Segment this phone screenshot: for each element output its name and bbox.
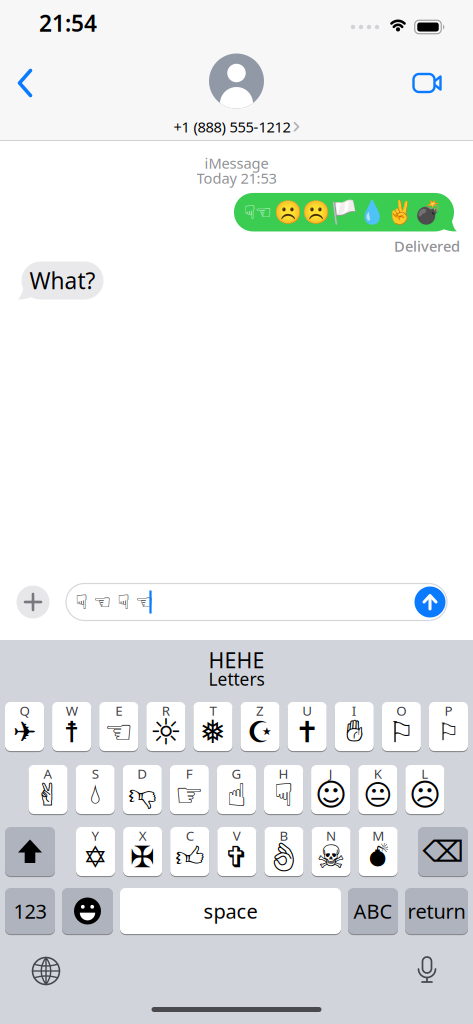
staticText: S	[92, 765, 99, 782]
staticText: ✡	[83, 840, 108, 874]
staticText: Today 21:53	[196, 168, 276, 188]
staticText: P	[444, 702, 452, 719]
button[interactable]: G	[217, 764, 256, 815]
staticText: What?	[29, 265, 95, 295]
staticText: 👎︎	[128, 778, 156, 812]
button[interactable]: H	[264, 764, 303, 815]
staticText: HEHE	[208, 646, 264, 674]
button[interactable]: P	[429, 701, 468, 752]
staticText: X	[139, 827, 147, 844]
button[interactable]: Q	[5, 701, 44, 752]
staticText: 👍︎	[175, 840, 204, 874]
staticText: return	[407, 898, 465, 924]
staticText: Letters	[208, 667, 264, 690]
staticText: ❅	[199, 713, 226, 751]
staticText: +1 (888) 555-1212	[173, 117, 290, 136]
staticText: E	[115, 702, 122, 719]
button[interactable]: N	[311, 826, 351, 877]
button[interactable]	[4, 61, 48, 105]
staticText: 21:54	[39, 8, 97, 38]
button[interactable]	[412, 73, 442, 93]
staticText: Y	[91, 827, 99, 844]
button[interactable]: I	[335, 701, 374, 752]
button[interactable]	[16, 585, 49, 618]
staticText: 😐︎	[363, 779, 392, 811]
button[interactable]: U	[288, 701, 327, 752]
button[interactable]: A	[28, 764, 68, 815]
button[interactable]: C	[170, 826, 209, 877]
staticText: ✋︎	[346, 717, 363, 747]
staticText: H	[279, 765, 289, 782]
staticText: 💣︎	[368, 842, 388, 872]
staticText: ☠	[317, 838, 346, 876]
staticText: iMessage	[204, 153, 268, 173]
button[interactable]: L	[405, 764, 444, 815]
button[interactable]: +1 (888) 555-1212	[173, 53, 299, 136]
button[interactable]: X	[123, 826, 162, 877]
button[interactable]	[5, 826, 55, 877]
button[interactable]: Z	[240, 701, 280, 752]
staticText: ☹️☹️🏳️💧✌️💣	[274, 199, 442, 225]
staticText: ⚐	[437, 718, 459, 746]
button[interactable]: J	[311, 764, 350, 815]
staticText: D	[137, 765, 147, 782]
staticText: T	[209, 702, 216, 719]
button[interactable]: F	[170, 764, 209, 815]
staticText: ☟︎ ☜︎ ☟︎ ☜︎	[75, 590, 153, 614]
staticText: ☺︎	[315, 777, 347, 813]
staticText: M	[372, 827, 384, 844]
button[interactable]	[62, 887, 113, 935]
staticText: ⌫	[422, 834, 463, 868]
staticText: 💧︎	[90, 781, 101, 809]
staticText: ⚐	[388, 715, 414, 749]
staticText: space	[203, 898, 257, 924]
staticText: N	[326, 827, 336, 844]
button[interactable]: B	[264, 826, 303, 877]
button[interactable]	[405, 949, 449, 993]
staticText: C	[186, 827, 194, 844]
staticText: Q	[20, 702, 30, 719]
staticText: F	[186, 765, 193, 782]
staticText: B	[279, 827, 288, 844]
button[interactable]: 123	[5, 887, 55, 935]
button[interactable]	[24, 949, 68, 993]
staticText: ☹︎	[409, 777, 441, 813]
staticText: ☟︎☜︎	[244, 201, 272, 223]
button[interactable]: M	[359, 826, 398, 877]
button[interactable]: O	[382, 701, 421, 752]
button[interactable]: ⌫	[418, 826, 468, 877]
staticText: ✌︎	[35, 777, 61, 813]
staticText: ✠	[130, 840, 155, 874]
staticText: ABC	[353, 898, 392, 924]
staticText: ☝︎	[227, 776, 246, 814]
button[interactable]: ABC	[348, 887, 398, 935]
button[interactable]: space	[120, 887, 341, 935]
button[interactable]: Y	[76, 826, 115, 877]
button[interactable]: R	[146, 701, 185, 752]
button[interactable]: return	[405, 887, 468, 935]
button[interactable]: D	[123, 764, 162, 815]
staticText: W	[66, 702, 78, 719]
staticText: J	[329, 765, 333, 782]
staticText: ☨	[64, 715, 80, 749]
button[interactable]: T	[193, 701, 232, 752]
staticText: ☞	[175, 776, 204, 814]
staticText: K	[374, 765, 382, 782]
staticText: ✝	[295, 715, 320, 749]
staticText: I	[352, 702, 357, 719]
staticText: L	[421, 765, 428, 782]
staticText: A	[43, 765, 52, 782]
button[interactable]: ☟︎ ☜︎ ☟︎ ☜︎	[66, 583, 447, 620]
button[interactable]: K	[358, 764, 397, 815]
staticText: ☟	[274, 776, 293, 814]
button[interactable]: V	[217, 826, 256, 877]
staticText: O	[396, 702, 406, 719]
button[interactable]: W	[52, 701, 91, 752]
staticText: R	[162, 702, 170, 719]
button[interactable]	[414, 586, 445, 617]
staticText: Z	[256, 702, 264, 719]
button[interactable]: E	[99, 701, 138, 752]
staticText: V	[233, 827, 241, 844]
button[interactable]: S	[76, 764, 115, 815]
staticText: U	[302, 702, 312, 719]
